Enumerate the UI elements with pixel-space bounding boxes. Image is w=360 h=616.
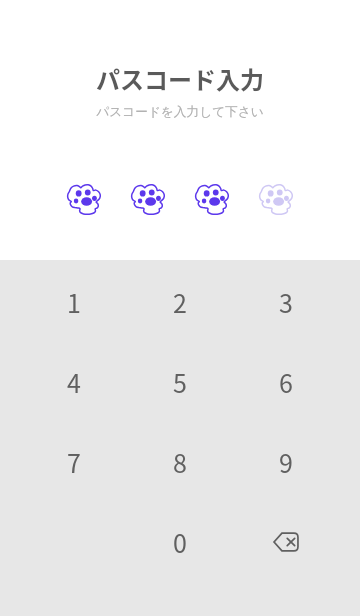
staticText: 8 bbox=[173, 444, 187, 480]
button[interactable]: 5 bbox=[127, 342, 233, 422]
staticText: パスコードを入力して下さい bbox=[0, 104, 360, 120]
button[interactable]: Backspace bbox=[233, 502, 339, 582]
staticText: 0 bbox=[173, 524, 187, 560]
button[interactable]: 1 bbox=[21, 262, 127, 342]
button[interactable]: 3 bbox=[233, 262, 339, 342]
staticText: 4 bbox=[67, 364, 81, 400]
staticText: 6 bbox=[279, 364, 293, 400]
button[interactable]: 4 bbox=[21, 342, 127, 422]
staticText: 3 bbox=[279, 284, 293, 320]
button[interactable]: 6 bbox=[233, 342, 339, 422]
staticText: 5 bbox=[173, 364, 187, 400]
button[interactable]: 9 bbox=[233, 422, 339, 502]
button[interactable]: 2 bbox=[127, 262, 233, 342]
button[interactable]: 0 bbox=[127, 502, 233, 582]
staticText: 2 bbox=[173, 284, 187, 320]
button[interactable]: 7 bbox=[21, 422, 127, 502]
staticText: 7 bbox=[67, 444, 81, 480]
staticText: 9 bbox=[279, 444, 293, 480]
other: Backspace bbox=[273, 529, 299, 555]
staticText: 1 bbox=[67, 284, 81, 320]
staticText: パスコード入力 bbox=[0, 61, 360, 96]
button[interactable]: 8 bbox=[127, 422, 233, 502]
